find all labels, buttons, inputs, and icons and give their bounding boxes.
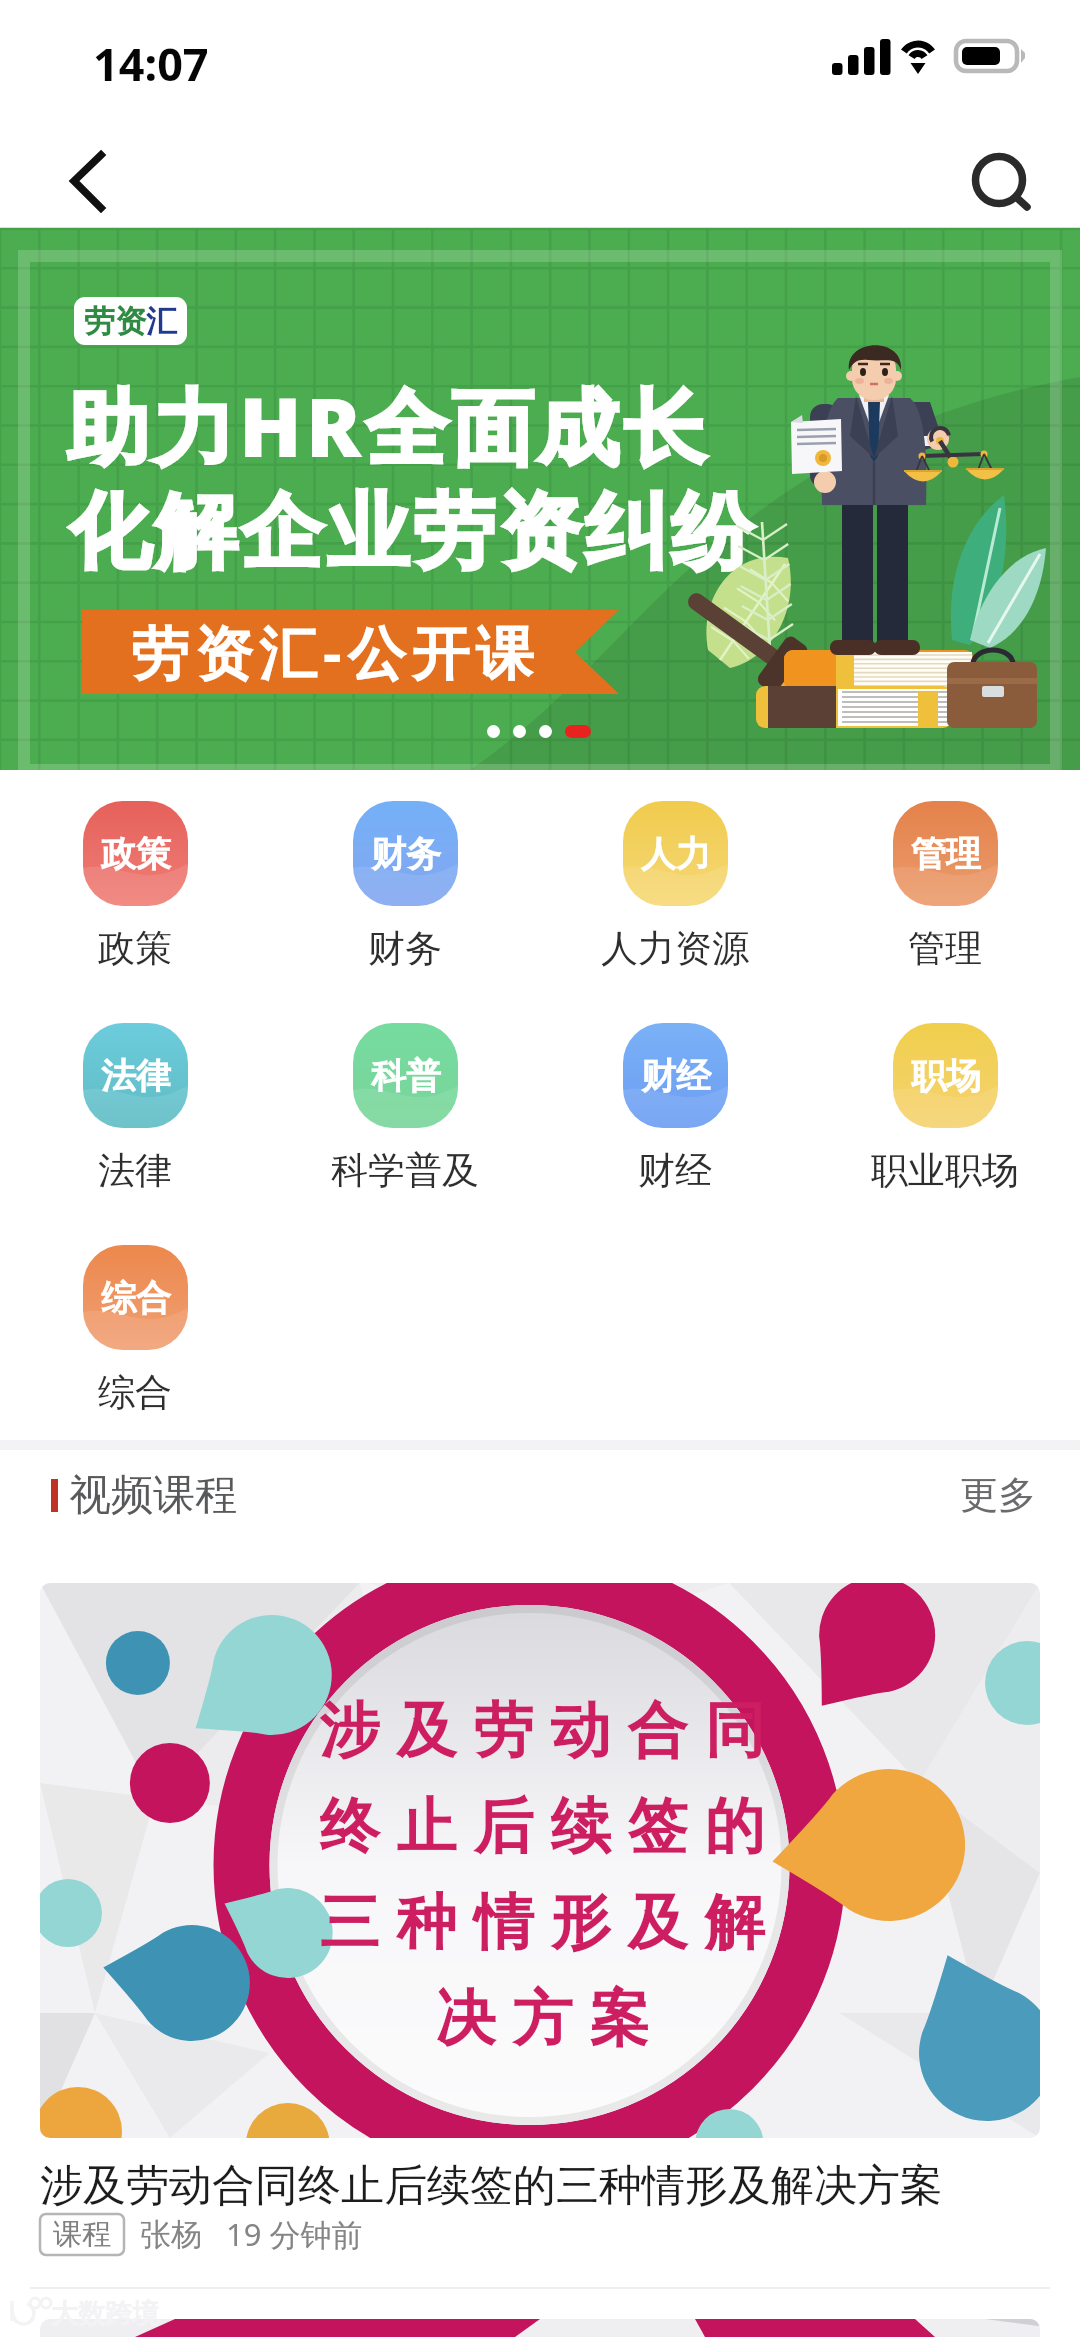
button[interactable]: 综合 bbox=[0, 1245, 270, 1416]
button[interactable]: 管理 bbox=[810, 801, 1080, 972]
button[interactable]: 政策 bbox=[0, 801, 270, 972]
staticText: 职业职场 bbox=[871, 1147, 1019, 1194]
button[interactable]: 科普 bbox=[270, 1023, 540, 1194]
staticText: 19 分钟前 bbox=[226, 2213, 363, 2255]
staticText: 政策 bbox=[98, 925, 172, 972]
staticText: 大数跨境 bbox=[51, 2297, 159, 2331]
staticText: 政策 bbox=[101, 832, 171, 876]
staticText: 科学普及 bbox=[331, 1147, 479, 1194]
staticText: 劳资汇-公开课 bbox=[131, 612, 540, 691]
button[interactable]: 涉及劳动合同 bbox=[0, 1540, 1080, 2287]
staticText: 法律 bbox=[98, 1147, 172, 1194]
staticText: 综合 bbox=[98, 1369, 172, 1416]
staticText: 三种情形及解 bbox=[311, 1885, 773, 1961]
staticText: 综合 bbox=[101, 1276, 171, 1320]
staticText: 汇 bbox=[146, 302, 177, 341]
staticText: 终止后续签的 bbox=[311, 1789, 773, 1865]
button[interactable]: 劳资 bbox=[0, 229, 1080, 770]
button[interactable]: Back bbox=[40, 122, 136, 218]
staticText: 管理 bbox=[911, 832, 981, 876]
staticText: 管理 bbox=[908, 925, 982, 972]
staticText: 化解企业劳资纠纷 bbox=[67, 481, 755, 584]
staticText: 人力 bbox=[641, 832, 711, 876]
staticText: 法律 bbox=[101, 1054, 171, 1098]
staticText: 财经 bbox=[638, 1147, 712, 1194]
button[interactable]: 更多 bbox=[940, 1451, 1056, 1539]
staticText: 课程 bbox=[53, 2216, 111, 2253]
staticText: 科普 bbox=[371, 1054, 441, 1098]
button[interactable]: Search bbox=[950, 122, 1046, 218]
staticText: 助力HR全面成长 bbox=[67, 369, 710, 481]
staticText: 更多 bbox=[960, 1471, 1036, 1519]
button[interactable]: 财经 bbox=[540, 1023, 810, 1194]
staticText: 涉及劳动合同终止后续签的三种情形及解决方案 bbox=[40, 2159, 943, 2213]
button[interactable]: 职场 bbox=[810, 1023, 1080, 1194]
staticText: 人力资源 bbox=[601, 925, 749, 972]
staticText: 劳资 bbox=[84, 302, 146, 341]
staticText: 职场 bbox=[911, 1054, 981, 1098]
button[interactable]: 财务 bbox=[270, 801, 540, 972]
staticText: 财务 bbox=[368, 925, 442, 972]
button[interactable] bbox=[40, 2319, 1040, 2337]
button[interactable]: 人力 bbox=[540, 801, 810, 972]
staticText: 财务 bbox=[371, 832, 441, 876]
button[interactable]: 法律 bbox=[0, 1023, 270, 1194]
staticText: 涉及劳动合同 bbox=[311, 1693, 773, 1769]
staticText: 决方案 bbox=[427, 1981, 658, 2057]
staticText: 张杨 bbox=[140, 2215, 202, 2254]
staticText: 视频课程 bbox=[69, 1469, 237, 1522]
staticText: 14:07 bbox=[93, 33, 209, 94]
staticText: 财经 bbox=[641, 1054, 711, 1098]
